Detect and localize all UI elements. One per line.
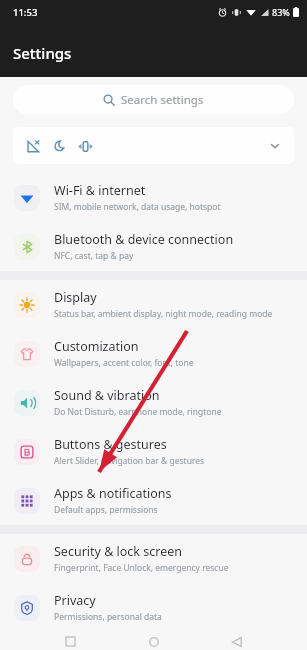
staticText: Search settings: [121, 92, 204, 108]
staticText: Customization: [54, 338, 139, 355]
staticText: Wi-Fi & internet: [54, 182, 146, 199]
button[interactable]: Back: [223, 633, 251, 650]
button[interactable]: Sound & vibration: [0, 378, 307, 427]
staticText: Buttons & gestures: [54, 436, 167, 453]
button[interactable]: Expand quick settings: [267, 138, 283, 154]
button[interactable]: Search settings: [13, 85, 294, 114]
staticText: NFC, cast, tap & pay: [54, 250, 134, 262]
button[interactable]: Vibrate: [76, 137, 94, 155]
button[interactable]: Security & lock screen: [0, 534, 307, 583]
button[interactable]: Privacy: [0, 583, 307, 632]
staticText: Display: [54, 289, 97, 306]
button[interactable]: Wi-Fi & internet: [0, 173, 307, 222]
staticText: Security & lock screen: [54, 543, 183, 560]
staticText: Fingerprint, Face Unlock, emergency resc…: [54, 562, 229, 574]
button[interactable]: Buttons & gestures: [0, 427, 307, 476]
button[interactable]: Airplane mode: [24, 137, 42, 155]
button[interactable]: Do Not Disturb: [50, 137, 68, 155]
staticText: 11:53: [13, 6, 38, 19]
staticText: Sound & vibration: [54, 387, 160, 404]
staticText: Apps & notifications: [54, 485, 172, 502]
staticText: Privacy: [54, 592, 96, 609]
button[interactable]: Display: [0, 280, 307, 329]
button[interactable]: Customization: [0, 329, 307, 378]
button[interactable]: Recent apps: [56, 633, 84, 650]
staticText: Permissions, personal data: [54, 611, 162, 623]
staticText: Do Not Disturb, earphone mode, ringtone: [54, 406, 222, 418]
staticText: Status bar, ambient display, night mode,…: [54, 308, 273, 320]
button[interactable]: Home: [140, 633, 168, 650]
staticText: Bluetooth & device connection: [54, 231, 234, 248]
staticText: Default apps, permissions: [54, 504, 158, 516]
button[interactable]: Airplane mode: [13, 127, 294, 164]
button[interactable]: Apps & notifications: [0, 476, 307, 525]
staticText: Alert Slider, navigation bar & gestures: [54, 455, 205, 467]
staticText: Settings: [13, 43, 72, 63]
button[interactable]: Bluetooth & device connection: [0, 222, 307, 271]
staticText: Wallpapers, accent color, font, tone: [54, 357, 194, 369]
staticText: 83%: [272, 6, 290, 18]
staticText: SIM, mobile network, data usage, hotspot: [54, 201, 221, 213]
